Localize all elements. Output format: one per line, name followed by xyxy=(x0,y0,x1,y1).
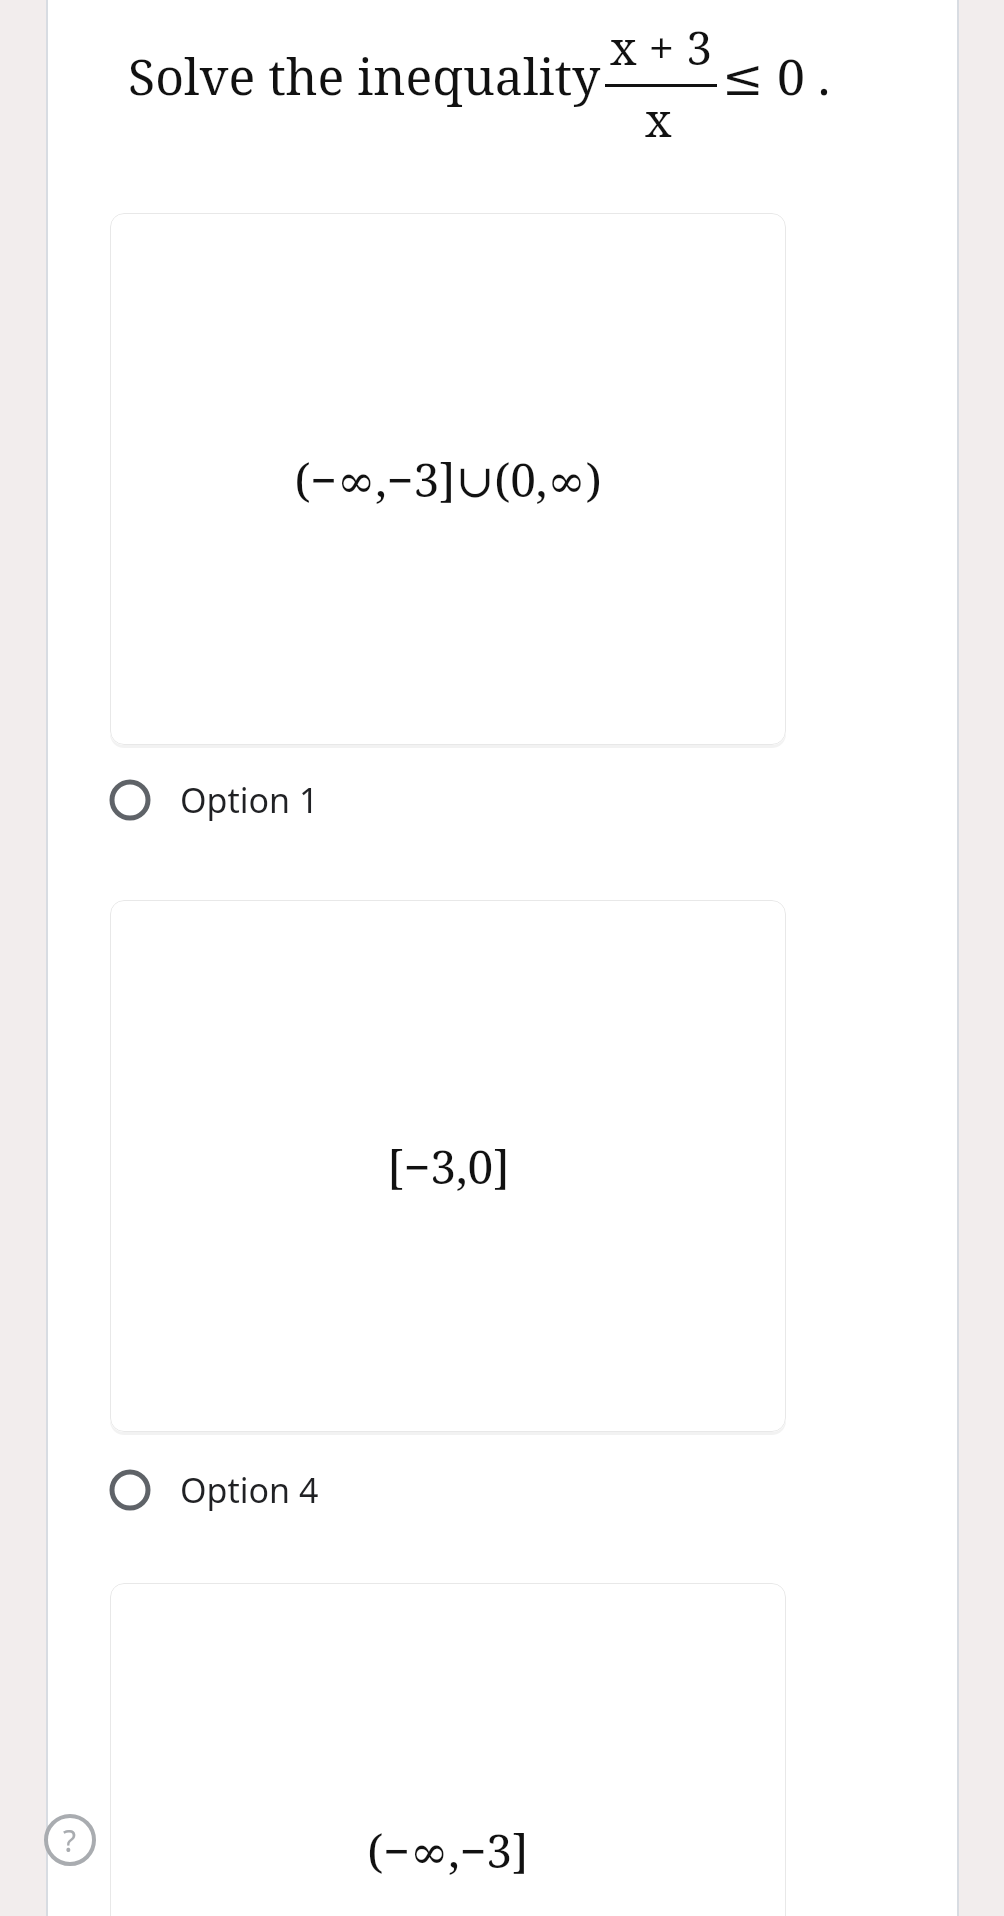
button[interactable] xyxy=(110,1583,786,1916)
staticText: ≤ 0 . xyxy=(722,42,831,110)
button[interactable]: Help xyxy=(36,1806,104,1874)
staticText: (−∞,−3] xyxy=(367,1819,529,1882)
staticText: Solve the inequality xyxy=(128,42,601,110)
button[interactable]: [−3,0] xyxy=(110,900,786,1432)
button[interactable]: (−∞,−3]∪(0,∞) xyxy=(110,213,786,745)
staticText: (−∞,−3]∪(0,∞) xyxy=(294,448,602,511)
staticText: ? xyxy=(63,1820,77,1861)
staticText: Option 4 xyxy=(180,1467,319,1513)
staticText: x + 3 xyxy=(610,16,712,79)
staticText: x xyxy=(645,88,672,151)
button[interactable]: Option 4 xyxy=(90,1446,490,1534)
staticText: Option 1 xyxy=(180,777,319,823)
staticText: [−3,0] xyxy=(387,1135,510,1198)
button[interactable]: Option 1 xyxy=(90,756,490,844)
